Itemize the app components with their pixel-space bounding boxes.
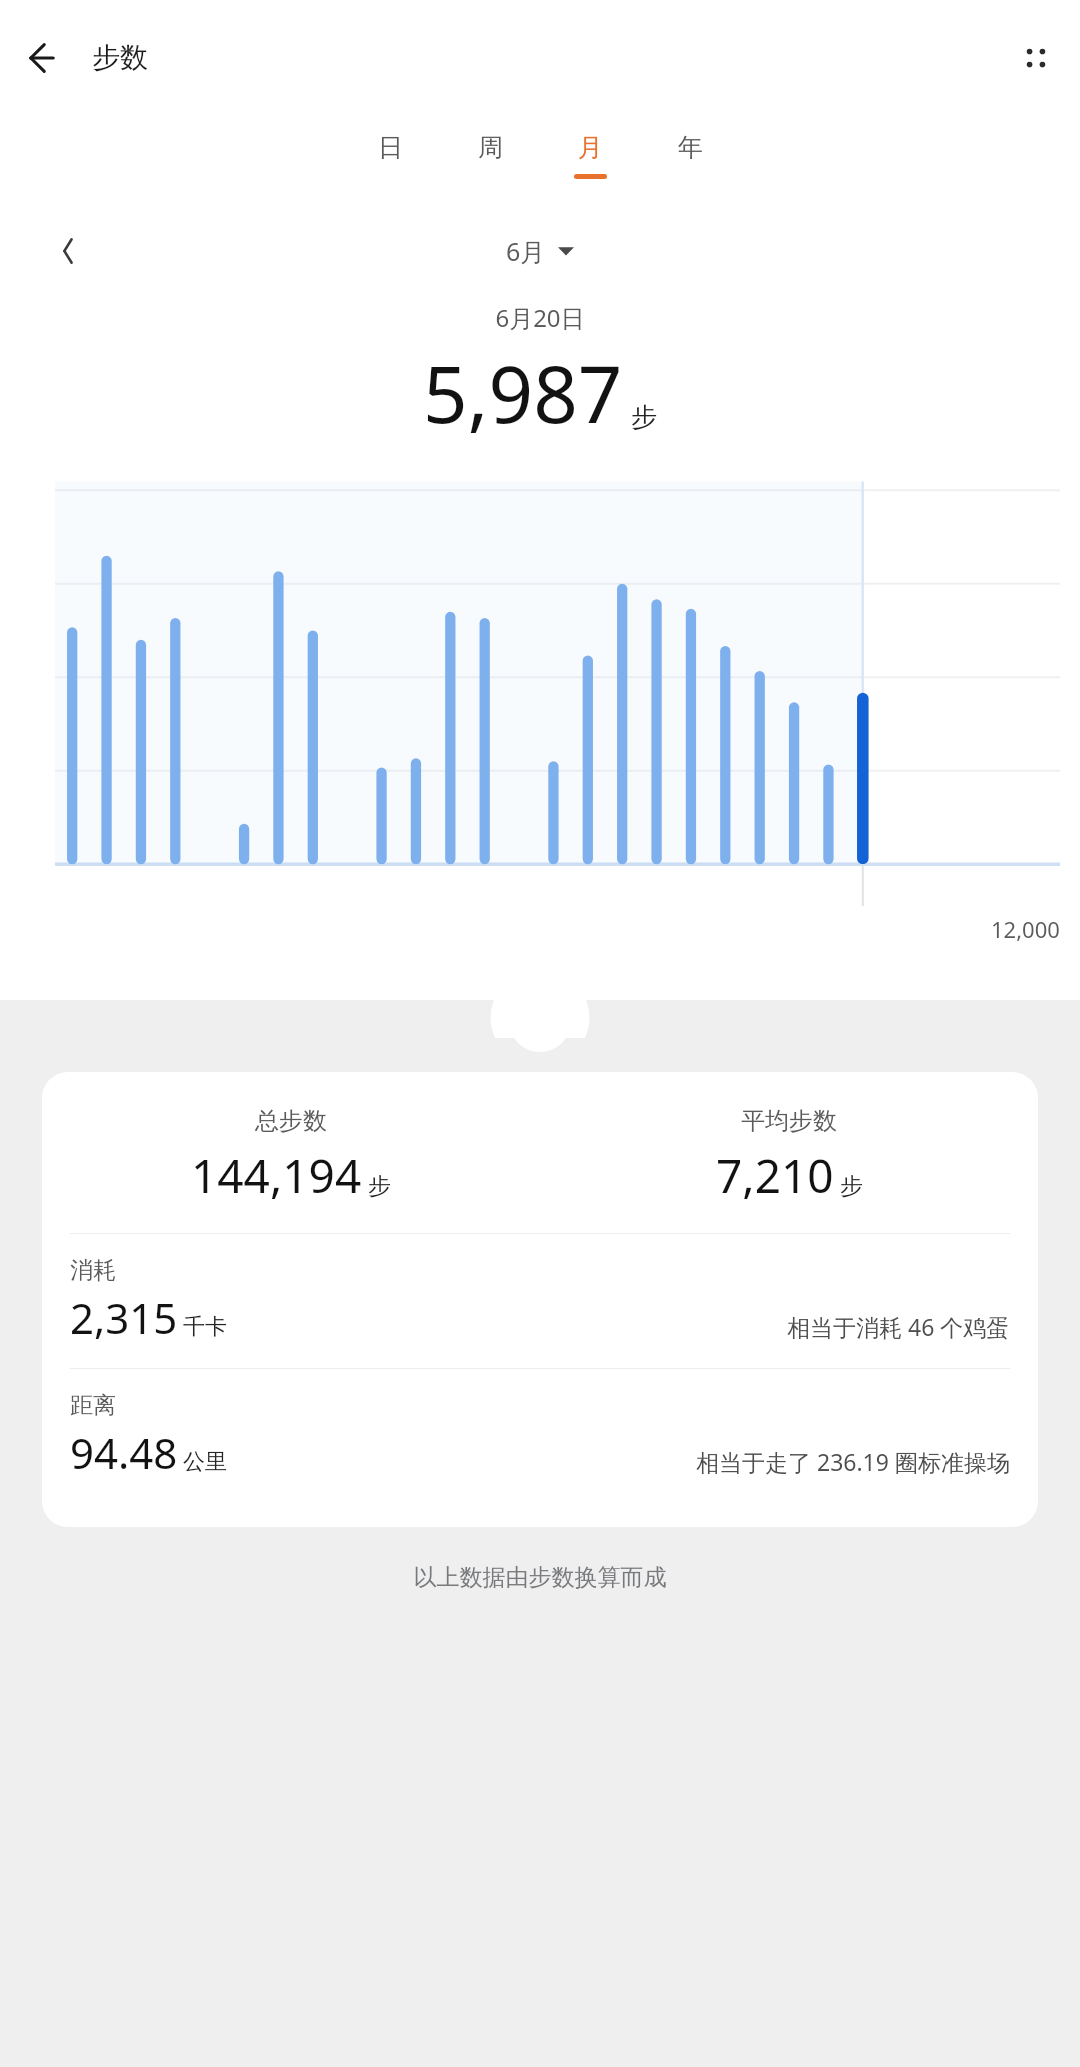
button[interactable]: 周 (440, 120, 540, 210)
staticText: 6,000 (1003, 1101, 1060, 1131)
button[interactable]: 6月 (506, 234, 574, 268)
staticText: 144,194 (191, 1144, 362, 1207)
button[interactable]: 平均步数 (540, 1106, 1038, 1207)
staticText: 以上数据由步数换算而成 (0, 1563, 1080, 1592)
staticText: 周 (478, 132, 503, 163)
button[interactable]: 消耗 (42, 1234, 1038, 1368)
staticText: 6月 (506, 234, 546, 268)
staticText: 月 (578, 132, 603, 163)
button[interactable]: 总步数 (42, 1106, 540, 1207)
button[interactable]: 月 (540, 120, 640, 210)
staticText: 相当于消耗 46 个鸡蛋 (787, 1311, 1010, 1342)
staticText: 公里 (183, 1448, 227, 1476)
button[interactable]: Expand details (509, 990, 571, 1052)
staticText: 7,210 (716, 1144, 834, 1207)
staticText: 步 (368, 1172, 391, 1201)
button[interactable]: 距离 (42, 1369, 1038, 1503)
staticText: 2,315 (70, 1289, 178, 1346)
staticText: 94.48 (70, 1424, 178, 1481)
staticText: 平均步数 (741, 1106, 837, 1136)
button[interactable]: More options (1008, 30, 1064, 86)
button[interactable]: Previous month (40, 223, 96, 279)
staticText: 消耗 (70, 1256, 116, 1285)
staticText: 步数 (92, 40, 148, 75)
staticText: 总步数 (255, 1106, 327, 1136)
button[interactable]: Back (14, 30, 70, 86)
staticText: 6月20日 (0, 301, 1080, 334)
staticText: 距离 (70, 1391, 116, 1420)
staticText: 3,000 (1003, 1195, 1060, 1225)
staticText: 相当于走了 236.19 圈标准操场 (696, 1446, 1010, 1477)
staticText: 日 (378, 132, 403, 163)
staticText: 年 (678, 132, 703, 163)
staticText: 5,987 (423, 340, 623, 446)
button[interactable]: 日 (340, 120, 440, 210)
staticText: 步 (631, 401, 657, 434)
staticText: 千卡 (183, 1313, 227, 1341)
staticText: 12,000 (991, 914, 1060, 944)
staticText: 6/21 (528, 1354, 573, 1383)
staticText: 步 (840, 1172, 863, 1201)
button[interactable]: 年 (640, 120, 740, 210)
